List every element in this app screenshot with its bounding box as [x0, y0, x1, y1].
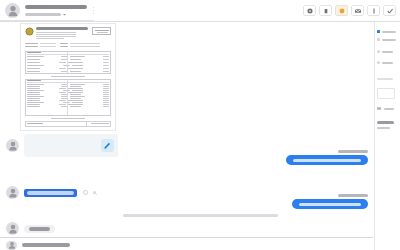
button[interactable]: Record: [303, 5, 316, 16]
button[interactable]: [377, 61, 393, 64]
button[interactable]: More: [367, 5, 380, 16]
button[interactable]: [5, 0, 94, 21]
button[interactable]: [377, 30, 396, 33]
button[interactable]: [377, 50, 393, 53]
button[interactable]: Highlight: [335, 5, 348, 16]
button[interactable]: Preview: [377, 88, 395, 99]
button[interactable]: Delete: [319, 5, 332, 16]
button[interactable]: [377, 38, 396, 41]
button[interactable]: [286, 155, 368, 165]
button[interactable]: Done: [383, 5, 396, 16]
button[interactable]: Edit: [24, 134, 118, 157]
button[interactable]: Invoice attachment: [20, 23, 116, 131]
button[interactable]: [29, 227, 50, 231]
button[interactable]: [27, 191, 74, 195]
button[interactable]: [292, 199, 368, 209]
button[interactable]: Edit: [101, 139, 114, 152]
button[interactable]: Mail: [351, 5, 364, 16]
